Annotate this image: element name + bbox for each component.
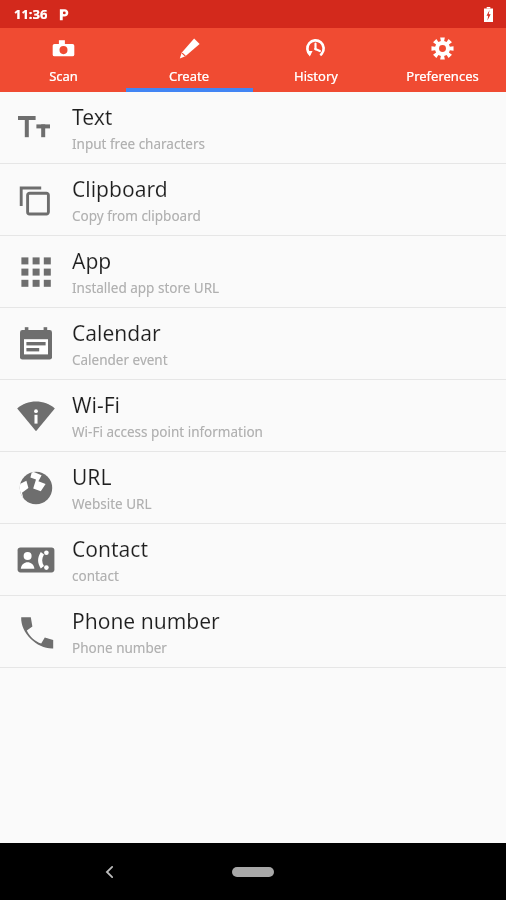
button[interactable]: Text (0, 92, 506, 163)
other: Scan (52, 37, 75, 60)
staticText: Copy from clipboard (72, 207, 201, 225)
other: History (304, 37, 327, 60)
button[interactable]: History (252, 28, 379, 92)
staticText: URL (72, 463, 112, 492)
other: Create (178, 37, 201, 60)
button[interactable]: URL (0, 452, 506, 523)
staticText: Wi-Fi (72, 391, 121, 420)
staticText: contact (72, 567, 119, 585)
staticText: Text (72, 103, 113, 132)
button[interactable]: Scan (0, 28, 126, 92)
staticText: Calender event (72, 351, 168, 369)
button[interactable]: Phone number (0, 596, 506, 667)
staticText: Installed app store URL (72, 279, 220, 297)
staticText: History (294, 67, 338, 85)
button[interactable]: Clipboard (0, 164, 506, 235)
staticText: Scan (49, 67, 78, 85)
staticText: Create (169, 67, 209, 85)
staticText: 11:36 (14, 5, 48, 23)
button[interactable]: Calendar (0, 308, 506, 379)
button[interactable]: Back (92, 854, 128, 890)
staticText: Calendar (72, 319, 161, 348)
staticText: Wi-Fi access point information (72, 423, 263, 441)
staticText: Clipboard (72, 175, 168, 204)
other: Preferences (431, 37, 454, 60)
button[interactable]: App (0, 236, 506, 307)
staticText: Contact (72, 535, 148, 564)
button[interactable]: Preferences (379, 28, 506, 92)
staticText: Input free characters (72, 135, 205, 153)
button[interactable]: Wi-Fi (0, 380, 506, 451)
button[interactable]: Create (126, 28, 252, 92)
button[interactable]: Contact (0, 524, 506, 595)
staticText: App (72, 247, 112, 276)
button[interactable]: Home (232, 867, 274, 877)
staticText: Preferences (406, 67, 479, 85)
staticText: Website URL (72, 495, 152, 513)
staticText: Phone number (72, 639, 167, 657)
staticText: Phone number (72, 607, 220, 636)
